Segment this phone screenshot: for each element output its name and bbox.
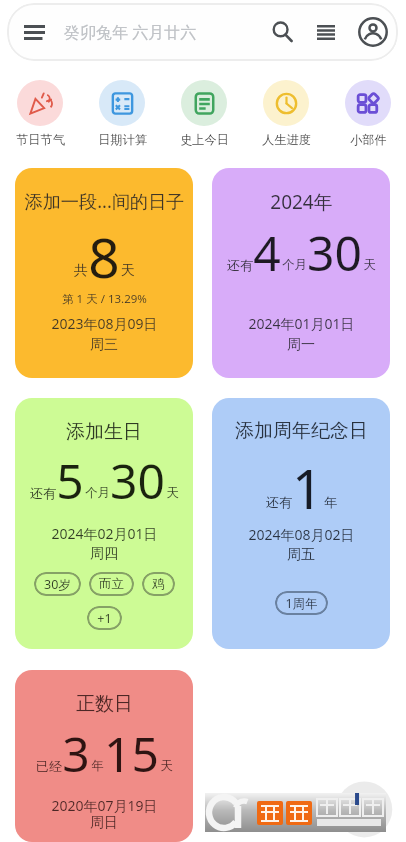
staticText: 癸卯兔年 六月廿六 (64, 21, 261, 43)
button[interactable]: 正数日 (15, 670, 193, 842)
staticText: 周一 (287, 336, 315, 354)
staticText: 个月 (85, 485, 110, 501)
staticText: 节日节气 (16, 132, 65, 147)
staticText: 添加周年纪念日 (235, 419, 368, 443)
staticText: 1 (292, 451, 323, 525)
staticText: 而立 (99, 576, 124, 592)
staticText: 天 (160, 758, 173, 774)
staticText: 15 (104, 721, 159, 786)
staticText: 周四 (90, 545, 118, 563)
staticText: 添加生日 (66, 420, 142, 444)
staticText: 共 (74, 262, 88, 280)
staticText: 3 (62, 721, 90, 786)
staticText: 30 (110, 448, 165, 513)
button[interactable]: Menu (7, 3, 398, 61)
staticText: 30 (307, 220, 362, 285)
staticText: 8 (88, 219, 120, 294)
button[interactable]: 而立 (89, 572, 134, 596)
button[interactable]: 添加周年纪念日 (212, 398, 390, 649)
staticText: 天 (166, 485, 179, 501)
button[interactable]: 节日节气 (0, 80, 81, 147)
staticText: 鸡 (152, 576, 165, 592)
button[interactable]: 小部件 (327, 80, 406, 147)
staticText: 添加一段...间的日子 (24, 189, 185, 214)
staticText: 2024年08月02日 (248, 525, 355, 544)
staticText: 小部件 (350, 132, 387, 147)
staticText: 周日 (90, 814, 118, 832)
button[interactable]: 鸡 (142, 572, 175, 596)
staticText: 还有 (227, 257, 253, 273)
staticText: 30岁 (44, 576, 71, 593)
staticText: 天 (363, 257, 376, 273)
staticText: 已经 (36, 758, 62, 774)
staticText: 年 (324, 494, 337, 510)
button[interactable]: 2024年 (212, 168, 390, 378)
staticText: 1周年 (285, 595, 318, 612)
staticText: 史上今日 (180, 132, 229, 147)
staticText: 年 (91, 758, 104, 774)
button[interactable]: Menu (7, 3, 62, 61)
button[interactable]: 添加一段...间的日子 (15, 168, 193, 378)
staticText: 5 (56, 448, 84, 513)
staticText: 日期计算 (98, 132, 147, 147)
button[interactable]: 史上今日 (163, 80, 245, 147)
staticText: 人生进度 (262, 132, 311, 147)
staticText: +1 (97, 610, 112, 627)
button[interactable]: List view (304, 3, 348, 61)
staticText: 第 1 天 / 13.29% (62, 291, 147, 307)
button[interactable]: +1 (87, 606, 122, 630)
button[interactable]: 日期计算 (81, 80, 163, 147)
button[interactable]: 1周年 (275, 591, 328, 615)
button[interactable]: Search (261, 3, 304, 61)
staticText: 2023年08月09日 (51, 314, 158, 333)
staticText: 天 (121, 262, 135, 280)
staticText: 周三 (90, 336, 118, 354)
staticText: 还有 (266, 494, 292, 510)
staticText: 个月 (282, 257, 307, 273)
button[interactable]: 添加生日 (15, 398, 193, 649)
button[interactable]: 人生进度 (245, 80, 327, 147)
staticText: 2024年02月01日 (51, 524, 158, 543)
button[interactable]: Account (348, 3, 398, 61)
staticText: 正数日 (76, 692, 133, 716)
staticText: 2020年07月19日 (51, 796, 158, 815)
staticText: 2024年 (270, 189, 333, 215)
staticText: 4 (253, 220, 281, 285)
staticText: 2024年01月01日 (248, 314, 355, 333)
staticText: 周五 (287, 546, 315, 564)
staticText: 还有 (30, 485, 56, 501)
button[interactable]: 30岁 (34, 572, 81, 596)
